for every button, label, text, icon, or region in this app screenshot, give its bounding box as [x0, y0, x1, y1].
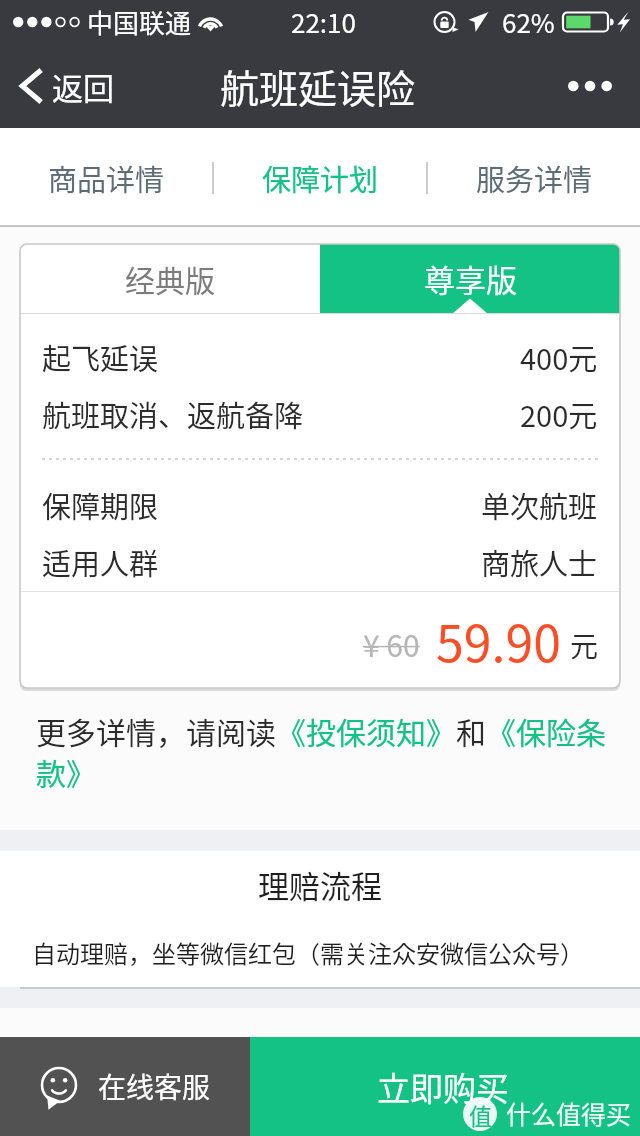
staticText: 在线客服 [98, 1066, 211, 1107]
staticText: 立即购买 [377, 1063, 509, 1111]
staticText: 经典版 [125, 257, 215, 300]
staticText: 起飞延误 [42, 336, 159, 378]
staticText: 什么值得买 [506, 1095, 632, 1131]
staticText: 400元 [520, 336, 598, 378]
button[interactable]: 尊享版 [320, 244, 620, 313]
staticText: 200元 [520, 393, 598, 435]
staticText: 62% [502, 3, 555, 41]
staticText: 22:10 [291, 3, 356, 41]
staticText: 尊享版 [424, 256, 517, 301]
button[interactable]: 立即购买 [250, 1037, 640, 1136]
staticText: 自动理赔，坐等微信红包（需关注众安微信公众号） [32, 935, 584, 970]
staticText: 中国联通 [87, 3, 192, 41]
staticText: 商品详情 [48, 157, 165, 199]
button[interactable]: 服务详情 [428, 128, 640, 227]
staticText: 商旅人士 [481, 541, 598, 583]
button[interactable]: 在线客服 [0, 1037, 250, 1136]
button[interactable]: More options [556, 44, 640, 128]
staticText: 航班取消、返航备降 [42, 393, 304, 435]
button[interactable]: 保障计划 [214, 128, 426, 227]
staticText: 保障计划 [262, 157, 379, 199]
staticText: 航班延误险 [220, 58, 416, 114]
staticText: 59.90 [436, 604, 561, 676]
staticText: 保障期限 [42, 484, 159, 526]
staticText: 理赔流程 [258, 862, 382, 907]
button[interactable]: 经典版 [20, 244, 320, 313]
staticText: 元 [570, 625, 599, 666]
staticText: 更多详情，请阅读《投保须知》和《保险条款》 [36, 709, 626, 793]
staticText: 单次航班 [481, 484, 598, 526]
staticText: ¥ 60 [363, 622, 420, 665]
staticText: 服务详情 [476, 157, 593, 199]
staticText: 适用人群 [42, 541, 159, 583]
button[interactable]: 商品详情 [0, 128, 212, 227]
button[interactable]: 返回 [0, 44, 130, 128]
staticText: 值 [469, 1098, 492, 1131]
staticText: 返回 [52, 64, 114, 109]
